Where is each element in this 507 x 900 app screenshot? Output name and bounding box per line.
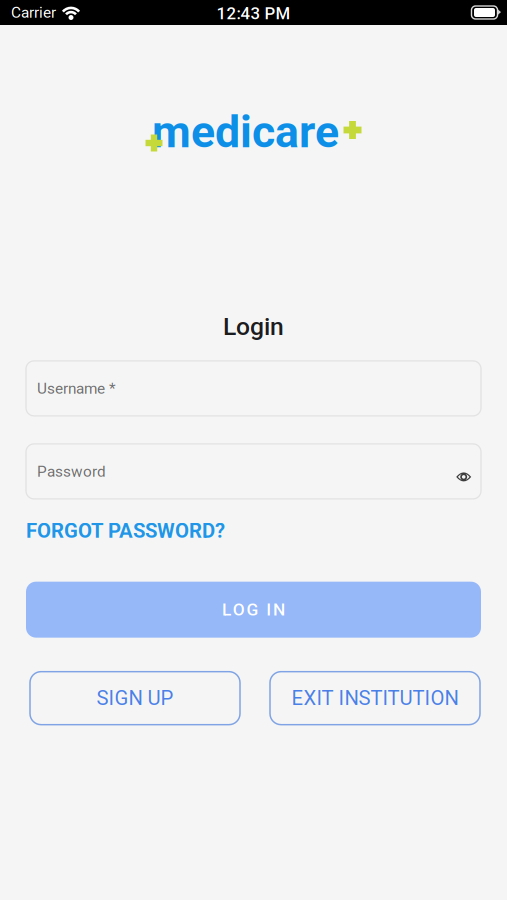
staticText: Password: [37, 462, 106, 480]
button[interactable]: LOG IN: [26, 582, 481, 638]
staticText: Carrier: [11, 3, 56, 21]
button[interactable]: SIGN UP: [30, 672, 240, 725]
staticText: Login: [223, 312, 284, 341]
staticText: LOG IN: [222, 599, 285, 620]
button[interactable]: Show password: [447, 456, 477, 486]
staticText: EXIT INSTITUTION: [291, 686, 458, 710]
staticText: Username *: [37, 379, 116, 397]
staticText: SIGN UP: [96, 686, 173, 710]
staticText: medicare: [152, 106, 339, 158]
button[interactable]: FORGOT PASSWORD?: [26, 519, 225, 543]
staticText: FORGOT PASSWORD?: [26, 519, 225, 543]
button[interactable]: EXIT INSTITUTION: [270, 672, 480, 725]
staticText: 12:43 PM: [216, 4, 290, 23]
